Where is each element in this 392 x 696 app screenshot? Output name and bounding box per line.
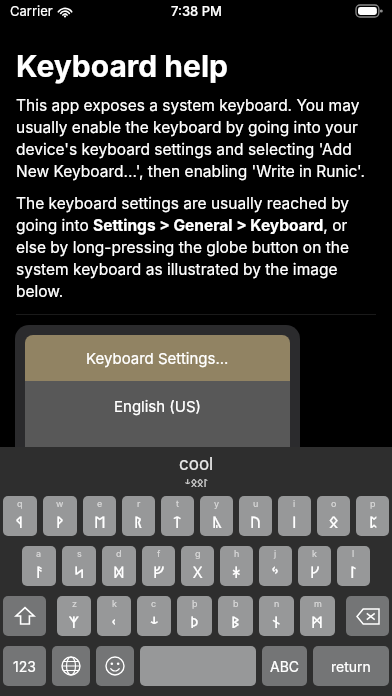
button[interactable]: r	[122, 496, 155, 536]
button[interactable]: w	[43, 496, 77, 536]
staticText: t	[176, 498, 179, 509]
staticText: m	[314, 598, 322, 609]
staticText: This app exposes a system keyboard. You …	[16, 96, 376, 180]
staticText: ᛚ	[350, 561, 357, 583]
staticText: e	[97, 498, 103, 509]
staticText: ᛏ	[173, 511, 182, 533]
staticText: ᚴ	[310, 561, 320, 583]
button[interactable]: i	[278, 496, 311, 536]
staticText: ᚠ	[153, 561, 164, 583]
button[interactable]: j	[259, 546, 292, 586]
staticText: Keyboard help	[16, 48, 228, 84]
staticText: d	[116, 548, 122, 559]
button[interactable]: c	[137, 596, 171, 636]
button[interactable]: t	[161, 496, 194, 536]
staticText: h	[234, 548, 240, 559]
staticText: ᛎᛟᛟᛚ	[185, 475, 208, 490]
staticText: ᛖ	[94, 511, 106, 533]
staticText: ᛈ	[369, 511, 377, 533]
button[interactable]: Backspace	[346, 596, 389, 636]
staticText: ᚾ	[272, 611, 281, 633]
button[interactable]: a	[22, 546, 56, 586]
staticText: ᛉ	[69, 611, 79, 633]
staticText: ᛟ	[329, 511, 339, 533]
button[interactable]: u	[239, 496, 272, 536]
staticText: g	[195, 548, 201, 559]
staticText: ᚱ	[134, 511, 143, 533]
button[interactable]: d	[102, 546, 136, 586]
button[interactable]: b	[218, 596, 253, 636]
staticText: The keyboard settings are usually reache…	[16, 194, 376, 300]
staticText: c	[151, 598, 157, 609]
button[interactable]: ABC	[262, 646, 307, 686]
staticText: k	[312, 548, 317, 559]
staticText: j	[274, 548, 277, 559]
staticText: ᚲ	[111, 611, 117, 633]
button[interactable]: z	[57, 596, 91, 636]
button[interactable]: l	[337, 546, 370, 586]
button[interactable]: f	[142, 546, 175, 586]
button[interactable]: return	[313, 646, 389, 686]
button[interactable]: Emoji	[96, 646, 134, 686]
button[interactable]: y	[200, 496, 233, 536]
staticText: ᛒ	[231, 611, 240, 633]
staticText: cool	[179, 454, 214, 475]
staticText: English (US)	[114, 397, 202, 415]
button[interactable]: q	[3, 496, 37, 536]
staticText: ᚷ	[193, 561, 203, 583]
button[interactable]: e	[83, 496, 116, 536]
staticText: u	[253, 498, 259, 509]
staticText: return	[331, 658, 371, 675]
button[interactable]: Shift	[3, 596, 46, 636]
staticText: ABC	[270, 658, 300, 675]
staticText: ᚣ	[212, 511, 222, 533]
staticText: Carrier	[10, 3, 53, 19]
staticText: f	[157, 548, 161, 559]
staticText: ᚦ	[190, 611, 199, 633]
staticText: y	[214, 498, 220, 509]
staticText: Keyboard Settings...	[86, 349, 229, 367]
button[interactable]	[140, 646, 256, 686]
staticText: i	[293, 498, 296, 509]
staticText: ᚨ	[36, 561, 43, 583]
button[interactable]: g	[181, 546, 214, 586]
staticText: þ	[192, 598, 198, 609]
staticText: Write in Runic	[109, 447, 207, 465]
button[interactable]: Globe	[52, 646, 90, 686]
button[interactable]: k	[97, 596, 131, 636]
staticText: l	[352, 548, 355, 559]
button[interactable]: s	[62, 546, 96, 586]
staticText: 123	[13, 658, 36, 675]
staticText: b	[233, 598, 239, 609]
staticText: k	[112, 598, 117, 609]
staticText: ᛋ	[74, 561, 85, 583]
staticText: a	[36, 548, 42, 559]
staticText: r	[137, 498, 141, 509]
staticText: 7:38 PM	[171, 3, 222, 19]
staticText: ᛩ	[16, 511, 24, 533]
staticText: z	[72, 598, 77, 609]
button[interactable]: n	[259, 596, 294, 636]
button[interactable]: 123	[3, 646, 46, 686]
button[interactable]: o	[317, 496, 350, 536]
staticText: ᛞ	[113, 561, 125, 583]
staticText: n	[274, 598, 280, 609]
staticText: o	[331, 498, 337, 509]
button[interactable]: k	[298, 546, 331, 586]
staticText: p	[370, 498, 376, 509]
button[interactable]: þ	[177, 596, 212, 636]
staticText: ᛃ	[271, 561, 280, 583]
staticText: ᛎ	[150, 611, 159, 633]
staticText: s	[77, 548, 82, 559]
button[interactable]: p	[356, 496, 389, 536]
staticText: ᚼ	[232, 561, 241, 583]
button[interactable]: h	[220, 546, 253, 586]
staticText: q	[17, 498, 23, 509]
button[interactable]: m	[300, 596, 335, 636]
staticText: ᚹ	[56, 511, 64, 533]
staticText: ᛗ	[311, 611, 324, 633]
staticText: w	[56, 498, 64, 509]
staticText: ᚢ	[250, 511, 261, 533]
staticText: ᛁ	[292, 511, 297, 533]
